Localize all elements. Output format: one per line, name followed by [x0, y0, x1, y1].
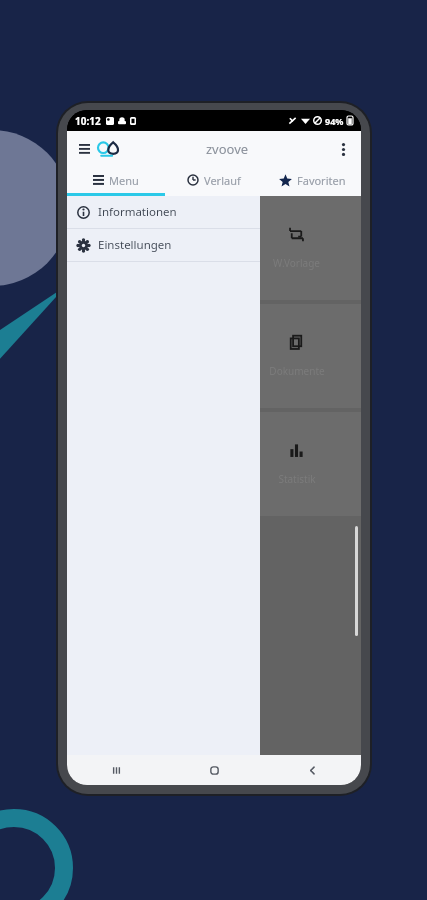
button[interactable]: Menu — [67, 167, 165, 193]
staticText: Dokumente — [269, 364, 325, 378]
button[interactable]: Favoriten — [263, 167, 361, 193]
button[interactable]: Recents — [67, 755, 165, 785]
button[interactable]: Statistik — [232, 412, 361, 516]
button[interactable]: Menu — [73, 138, 95, 160]
button[interactable]: Einstellungen — [67, 229, 260, 261]
staticText: zvoove — [206, 140, 249, 158]
staticText: Menu — [109, 173, 139, 188]
button[interactable]: W.Vorlage — [232, 196, 361, 300]
staticText: Favoriten — [297, 173, 346, 188]
staticText: 94% — [325, 115, 344, 127]
staticText: Informationen — [98, 204, 177, 220]
button[interactable]: Informationen — [67, 196, 260, 228]
staticText: Einstellungen — [98, 237, 172, 253]
button[interactable]: Dokumente — [232, 304, 361, 408]
staticText: Statistik — [278, 472, 316, 486]
button[interactable]: Home — [165, 755, 263, 785]
button[interactable]: Verlauf — [165, 167, 263, 193]
button[interactable]: More options — [333, 139, 353, 159]
button[interactable]: Back — [263, 755, 361, 785]
staticText: Verlauf — [204, 173, 241, 188]
staticText: W.Vorlage — [273, 256, 320, 270]
staticText: 10:12 — [75, 114, 101, 128]
